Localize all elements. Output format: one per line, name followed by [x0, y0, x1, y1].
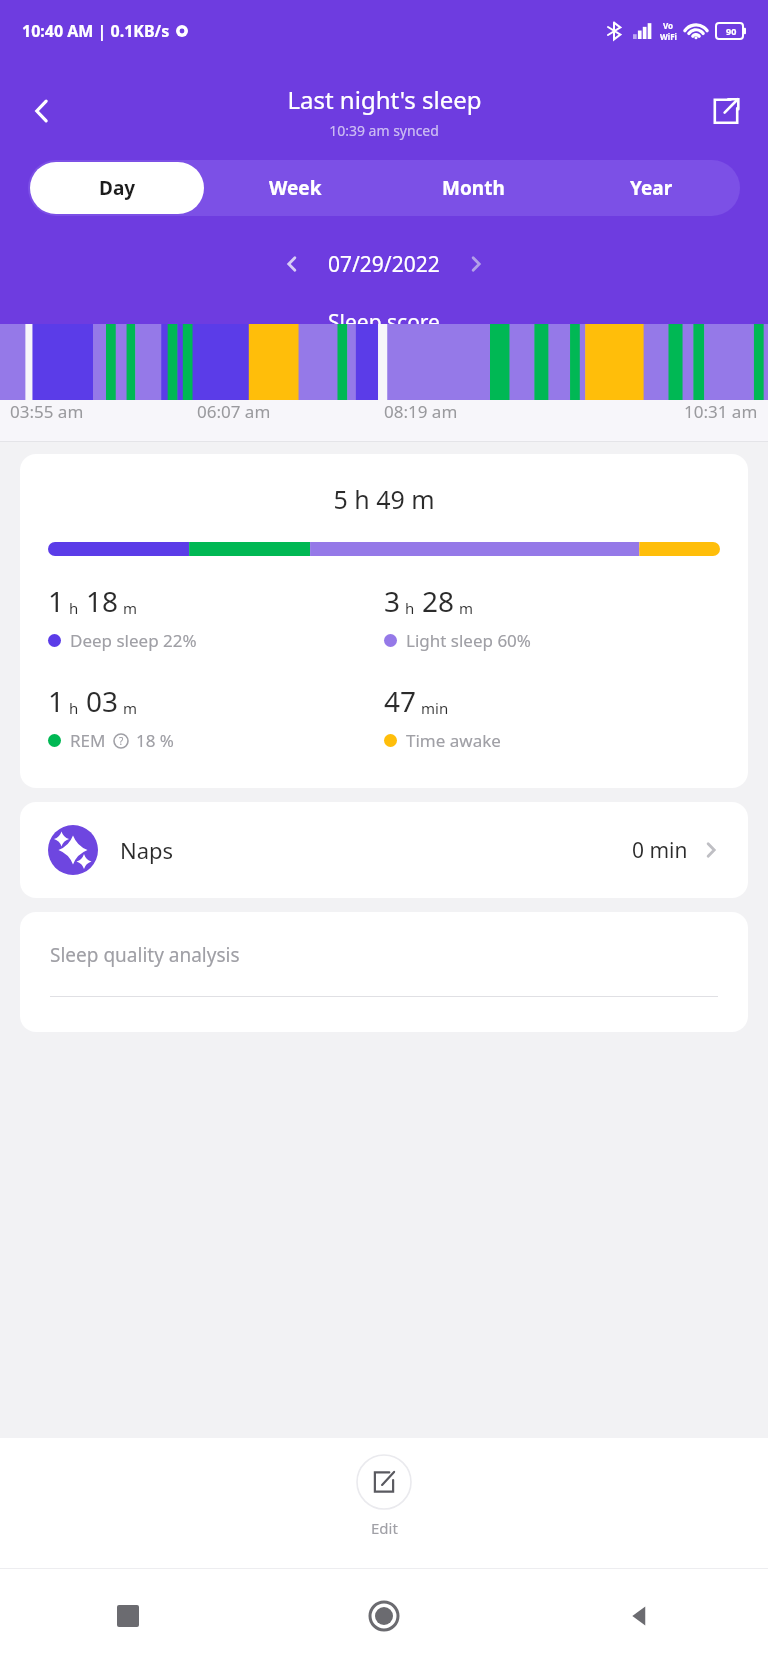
button[interactable]: Week: [206, 162, 384, 214]
button[interactable]: Previous day: [272, 244, 312, 284]
staticText: Sleep score: [328, 308, 440, 324]
staticText: REM: [70, 729, 106, 752]
staticText: 18: [86, 582, 119, 620]
button[interactable]: Home: [256, 1568, 512, 1664]
staticText: min: [421, 698, 449, 718]
staticText: Edit: [371, 1518, 398, 1538]
staticText: 47: [384, 682, 417, 720]
staticText: 28: [422, 582, 455, 620]
staticText: Year: [630, 175, 673, 201]
button[interactable]: Share: [702, 87, 750, 135]
staticText: ?: [119, 734, 124, 748]
staticText: 1: [48, 682, 65, 720]
button[interactable]: Year: [562, 162, 740, 214]
button[interactable]: Naps: [20, 802, 748, 898]
staticText: h: [69, 598, 79, 618]
staticText: 10:31 am: [684, 400, 758, 423]
staticText: Month: [442, 175, 505, 201]
staticText: h: [405, 598, 415, 618]
button[interactable]: Month: [384, 162, 562, 214]
button[interactable]: Back: [18, 87, 66, 135]
staticText: 0 min: [632, 836, 688, 865]
staticText: Week: [269, 175, 322, 201]
staticText: Time awake: [406, 729, 501, 752]
staticText: Sleep quality analysis: [50, 942, 240, 968]
staticText: m: [123, 698, 138, 718]
staticText: 1: [48, 582, 65, 620]
staticText: 10:40 AM | 0.1KB/s: [22, 20, 170, 42]
button[interactable]: Day: [30, 162, 204, 214]
staticText: 03: [86, 682, 119, 720]
staticText: m: [459, 598, 474, 618]
staticText: 18 %: [136, 729, 174, 752]
staticText: Last night's sleep: [287, 83, 482, 116]
staticText: h: [69, 698, 79, 718]
staticText: 3: [384, 582, 401, 620]
staticText: Vo: [663, 20, 674, 31]
staticText: 03:55 am: [10, 400, 84, 423]
staticText: 08:19 am: [384, 400, 458, 423]
staticText: Deep sleep 22%: [70, 629, 197, 652]
button[interactable]: Edit: [336, 1450, 432, 1542]
staticText: Light sleep 60%: [406, 629, 531, 652]
staticText: Naps: [120, 835, 174, 865]
button[interactable]: Recents: [0, 1568, 256, 1664]
button[interactable]: Next day: [456, 244, 496, 284]
button[interactable]: What is REM: [112, 732, 130, 750]
staticText: 5 h 49 m: [48, 482, 720, 516]
staticText: Day: [99, 175, 136, 201]
staticText: 10:39 am synced: [329, 121, 439, 140]
staticText: 06:07 am: [197, 400, 271, 423]
staticText: 07/29/2022: [328, 250, 440, 279]
staticText: 90: [726, 25, 737, 37]
staticText: WiFi: [660, 31, 677, 42]
staticText: m: [123, 598, 138, 618]
button[interactable]: Back: [512, 1568, 768, 1664]
